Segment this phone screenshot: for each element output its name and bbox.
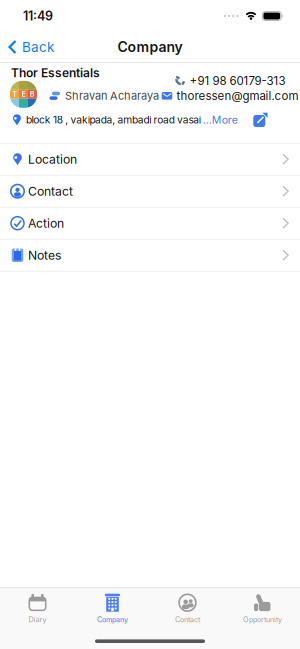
staticText: +91 98 60179-313 — [189, 74, 285, 88]
button[interactable]: Location — [0, 144, 300, 175]
staticText: Company — [97, 615, 128, 624]
staticText: thoressen@gmail.com — [176, 89, 298, 103]
staticText: 11:49 — [23, 8, 53, 23]
staticText: ...More — [203, 113, 238, 126]
button[interactable]: Contact — [150, 593, 225, 624]
staticText: Notes — [28, 248, 61, 263]
staticText: E — [21, 90, 25, 99]
staticText: Action — [28, 216, 64, 231]
button[interactable]: Company — [75, 593, 150, 624]
button[interactable]: Contact — [0, 176, 300, 207]
button[interactable]: Opportunity — [225, 593, 300, 624]
staticText: Shravan Acharaya — [65, 89, 159, 102]
button[interactable]: Action — [0, 208, 300, 239]
button[interactable]: Email thoressen@gmail.com — [161, 89, 298, 103]
button[interactable]: More address — [203, 113, 238, 126]
staticText: Opportunity — [243, 615, 282, 624]
staticText: Thor Essentials — [11, 65, 100, 80]
staticText: Contact — [28, 184, 73, 199]
staticText: B — [30, 90, 35, 99]
button[interactable]: Notes — [0, 240, 300, 271]
staticText: Company — [117, 38, 182, 55]
staticText: block 18 , vakipada, ambadi road vasai — [26, 114, 201, 126]
staticText: T — [12, 90, 17, 99]
button[interactable]: Diary — [0, 593, 75, 624]
button[interactable]: Open in Maps — [253, 112, 268, 127]
staticText: Location — [28, 152, 77, 167]
button[interactable]: Back — [0, 39, 54, 55]
staticText: Diary — [28, 615, 46, 624]
staticText: Contact — [175, 615, 200, 624]
staticText: Back — [22, 39, 54, 55]
button[interactable]: Call +91 98 60179-313 — [174, 74, 285, 88]
